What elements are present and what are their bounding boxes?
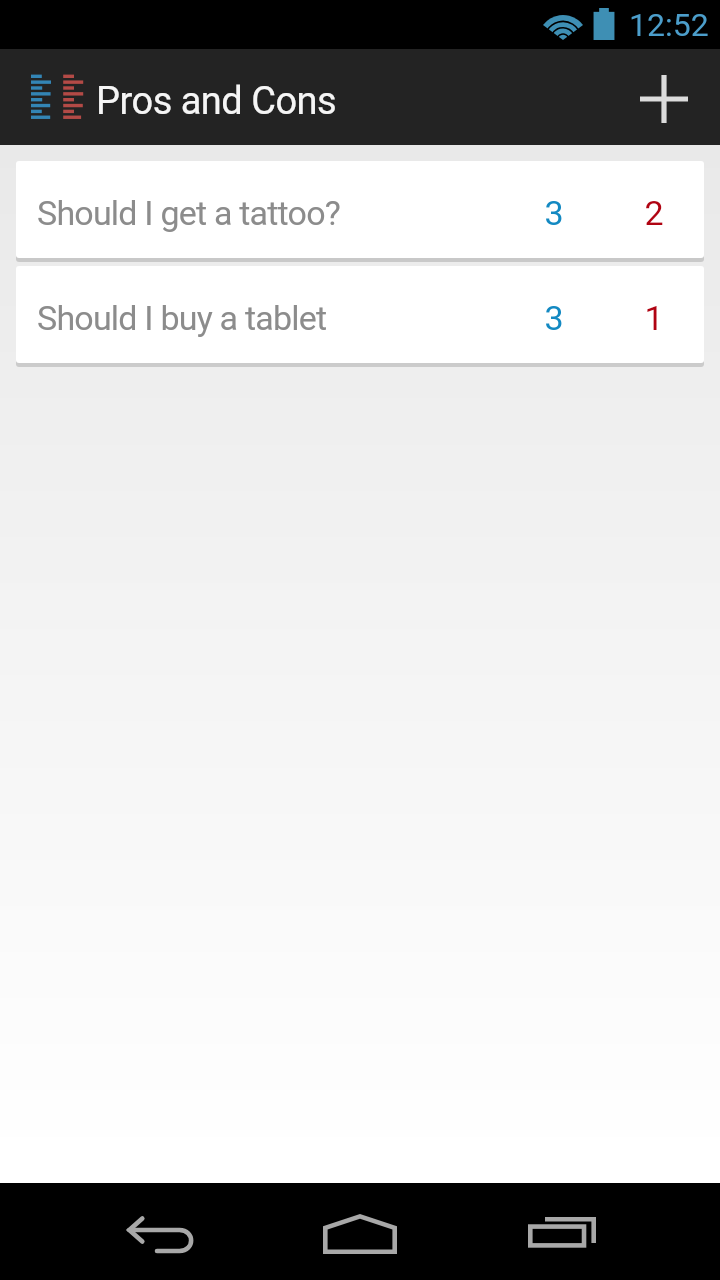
staticText: 12:52: [629, 6, 709, 44]
button[interactable]: Recent apps: [512, 1183, 612, 1280]
button[interactable]: Add: [616, 51, 712, 147]
staticText: 3: [544, 298, 564, 338]
staticText: Pros and Cons: [96, 79, 337, 124]
button[interactable]: Should I get a tattoo?: [16, 161, 704, 258]
staticText: 3: [544, 193, 564, 233]
staticText: 1: [644, 298, 664, 338]
button[interactable]: Back: [110, 1183, 210, 1280]
staticText: 2: [644, 193, 664, 233]
button[interactable]: Home: [310, 1183, 410, 1280]
button[interactable]: Should I buy a tablet: [16, 266, 704, 363]
staticText: Should I buy a tablet: [37, 298, 327, 338]
staticText: Should I get a tattoo?: [37, 193, 340, 233]
